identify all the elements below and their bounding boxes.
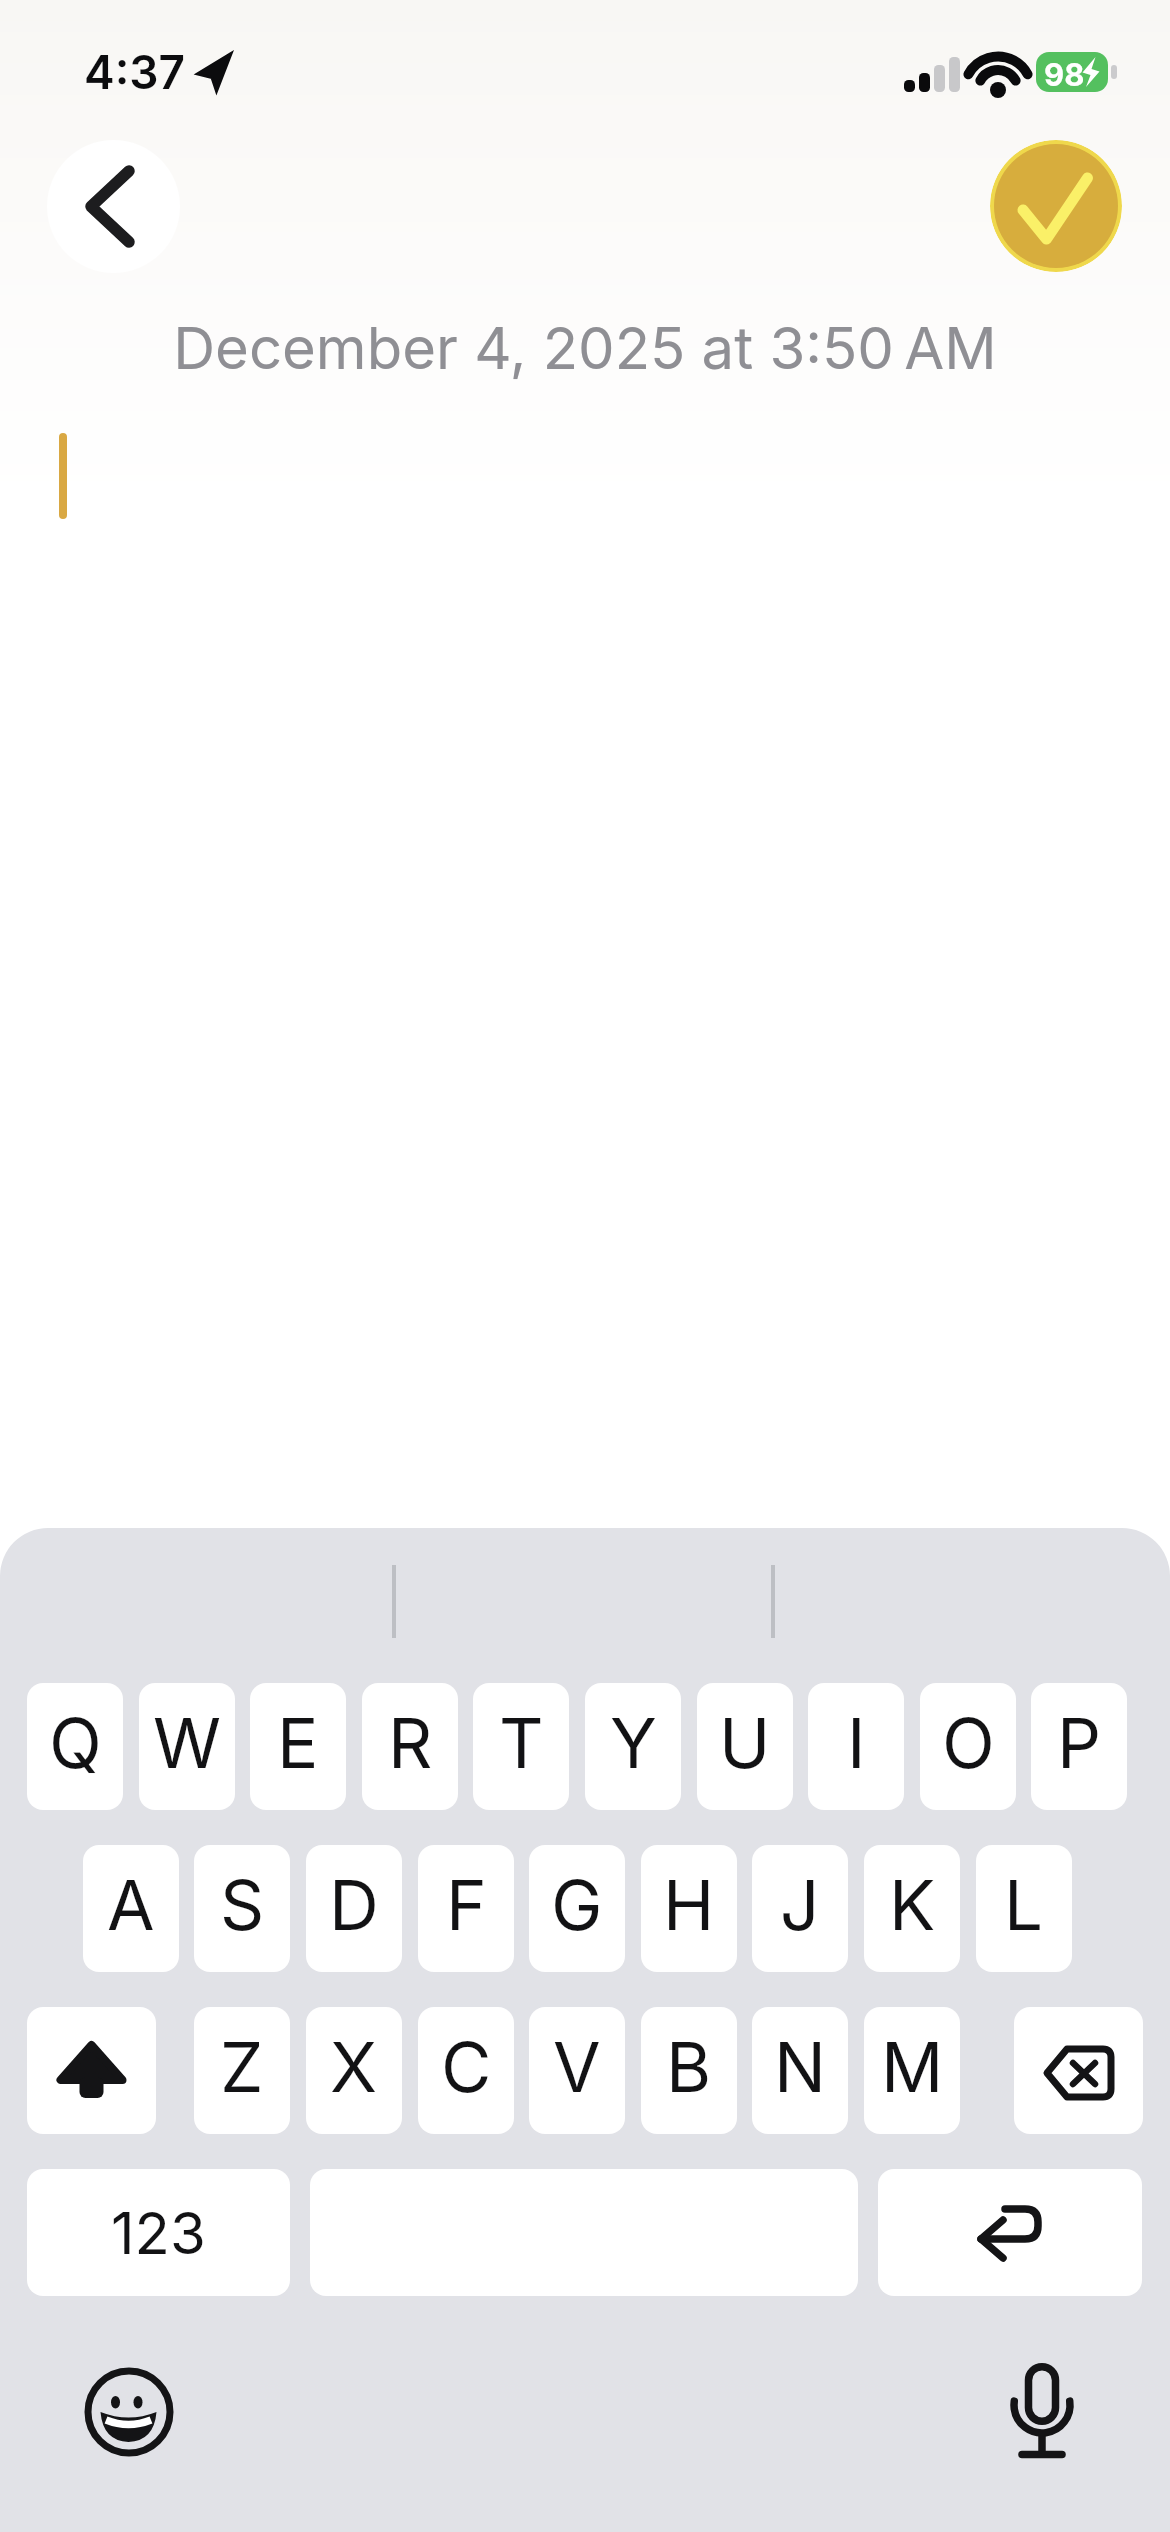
staticText: R	[388, 1701, 433, 1784]
staticText: A	[107, 1863, 155, 1946]
button[interactable]: P	[1031, 1683, 1127, 1810]
staticText: H	[663, 1863, 715, 1946]
button[interactable]: R	[362, 1683, 458, 1810]
staticText: 4:37	[84, 44, 186, 100]
button[interactable]: J	[752, 1845, 848, 1972]
staticText: 98	[1044, 56, 1085, 94]
staticText: Z	[220, 2025, 264, 2108]
button[interactable]	[84, 2367, 174, 2457]
staticText: December 4, 2025 at 3:50 AM	[173, 313, 997, 383]
staticText: T	[499, 1701, 544, 1784]
staticText: F	[446, 1863, 487, 1946]
button[interactable]	[990, 140, 1122, 272]
staticText: Q	[49, 1701, 102, 1784]
button[interactable]	[1008, 2358, 1076, 2462]
staticText: E	[277, 1701, 319, 1784]
button[interactable]	[47, 140, 180, 273]
staticText: W	[153, 1701, 221, 1784]
button[interactable]: U	[697, 1683, 793, 1810]
button[interactable]: T	[473, 1683, 569, 1810]
button[interactable]: M	[864, 2007, 960, 2134]
staticText: D	[329, 1863, 379, 1946]
button[interactable]	[878, 2169, 1142, 2296]
button[interactable]: Y	[585, 1683, 681, 1810]
button[interactable]: I	[808, 1683, 904, 1810]
button[interactable]: E	[250, 1683, 346, 1810]
staticText: 123	[111, 2198, 206, 2268]
staticText: N	[774, 2025, 826, 2108]
button[interactable]: F	[418, 1845, 514, 1972]
button[interactable]	[27, 2007, 156, 2134]
staticText: K	[889, 1863, 936, 1946]
button[interactable]	[1014, 2007, 1143, 2134]
staticText: X	[330, 2025, 378, 2108]
button[interactable]: 123	[27, 2169, 290, 2296]
staticText: C	[441, 2025, 492, 2108]
button[interactable]: S	[194, 1845, 290, 1972]
button[interactable]: O	[920, 1683, 1016, 1810]
staticText: B	[666, 2025, 712, 2108]
staticText: S	[220, 1863, 265, 1946]
button[interactable]: W	[139, 1683, 235, 1810]
staticText: L	[1004, 1863, 1044, 1946]
button[interactable]: X	[306, 2007, 402, 2134]
staticText: M	[881, 2025, 944, 2108]
staticText: G	[551, 1863, 603, 1946]
button[interactable]: N	[752, 2007, 848, 2134]
staticText: U	[719, 1701, 771, 1784]
button[interactable]: V	[529, 2007, 625, 2134]
button[interactable]: G	[529, 1845, 625, 1972]
staticText: O	[942, 1701, 995, 1784]
button[interactable]: L	[976, 1845, 1072, 1972]
staticText: Y	[610, 1701, 657, 1784]
button[interactable]: D	[306, 1845, 402, 1972]
button[interactable]: C	[418, 2007, 514, 2134]
staticText: J	[780, 1863, 820, 1946]
staticText: I	[847, 1701, 866, 1784]
button[interactable]: Q	[27, 1683, 123, 1810]
button[interactable]: Z	[194, 2007, 290, 2134]
button[interactable]: B	[641, 2007, 737, 2134]
staticText: P	[1057, 1701, 1102, 1784]
button[interactable]: H	[641, 1845, 737, 1972]
staticText: V	[553, 2025, 601, 2108]
button[interactable]: A	[83, 1845, 179, 1972]
button[interactable]: K	[864, 1845, 960, 1972]
